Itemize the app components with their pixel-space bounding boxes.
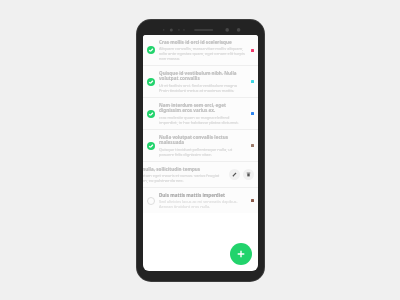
staticText: cras molestie quam ac magna eleifend imp…: [159, 115, 247, 125]
staticText: Ut et facilisis orci. Sed a vestibulure …: [159, 83, 247, 93]
button[interactable]: Edit: [229, 169, 240, 180]
staticText: Nam interdum sem orci, eget dignissim er…: [159, 102, 247, 114]
staticText: Aliquam convallis, massa vitae mollis al…: [159, 46, 247, 61]
button[interactable]: Mark complete: [143, 188, 258, 213]
button[interactable]: Mark incomplete: [143, 66, 258, 97]
staticText: sa nulla, sollicitudin tempus: [143, 166, 201, 172]
button[interactable]: Mark incomplete: [143, 130, 258, 161]
button[interactable]: Mark incomplete: [147, 110, 155, 118]
staticText: Cras mollis id orci id scelerisque: [159, 39, 232, 45]
button[interactable]: Mark incomplete: [147, 78, 155, 86]
button[interactable]: Mark incomplete: [143, 98, 258, 129]
staticText: mentum eget mauris et cursus. varius feu…: [143, 173, 220, 183]
button[interactable]: Mark incomplete: [143, 35, 258, 65]
button[interactable]: Mark complete: [147, 197, 155, 205]
button[interactable]: Delete: [243, 169, 254, 180]
button[interactable]: Mark incomplete: [147, 142, 155, 150]
staticText: Quisque id vestibulum nibh. Nulla volutp…: [159, 70, 247, 82]
staticText: Duis mattis mattis imperdiet: [159, 192, 225, 198]
staticText: Nulla volutpat convallis lectus malesuad…: [159, 134, 247, 146]
staticText: Sed ultricies lacus ac mi venenatis dapi…: [159, 199, 247, 209]
staticText: Quisque tincidunt pellentesque nulla, ut…: [159, 147, 247, 157]
button[interactable]: Mark incomplete: [147, 46, 155, 54]
button[interactable]: Add task: [230, 243, 252, 265]
